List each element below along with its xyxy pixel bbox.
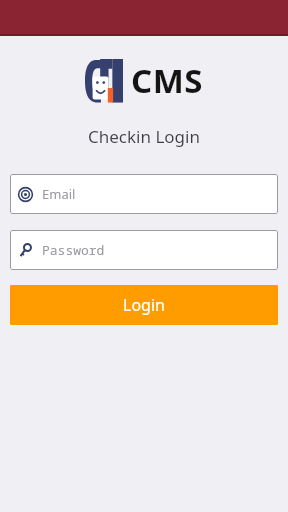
staticText: Login <box>123 294 165 316</box>
button[interactable]: Login <box>10 285 278 325</box>
button[interactable]: Email <box>10 174 278 214</box>
staticText: Email <box>42 185 76 203</box>
other: Email <box>17 186 34 203</box>
other: Password <box>17 242 34 259</box>
staticText: Password <box>42 241 105 259</box>
button[interactable]: Password <box>10 230 278 270</box>
staticText: CMS <box>131 58 203 103</box>
staticText: Checkin Login <box>88 125 200 148</box>
